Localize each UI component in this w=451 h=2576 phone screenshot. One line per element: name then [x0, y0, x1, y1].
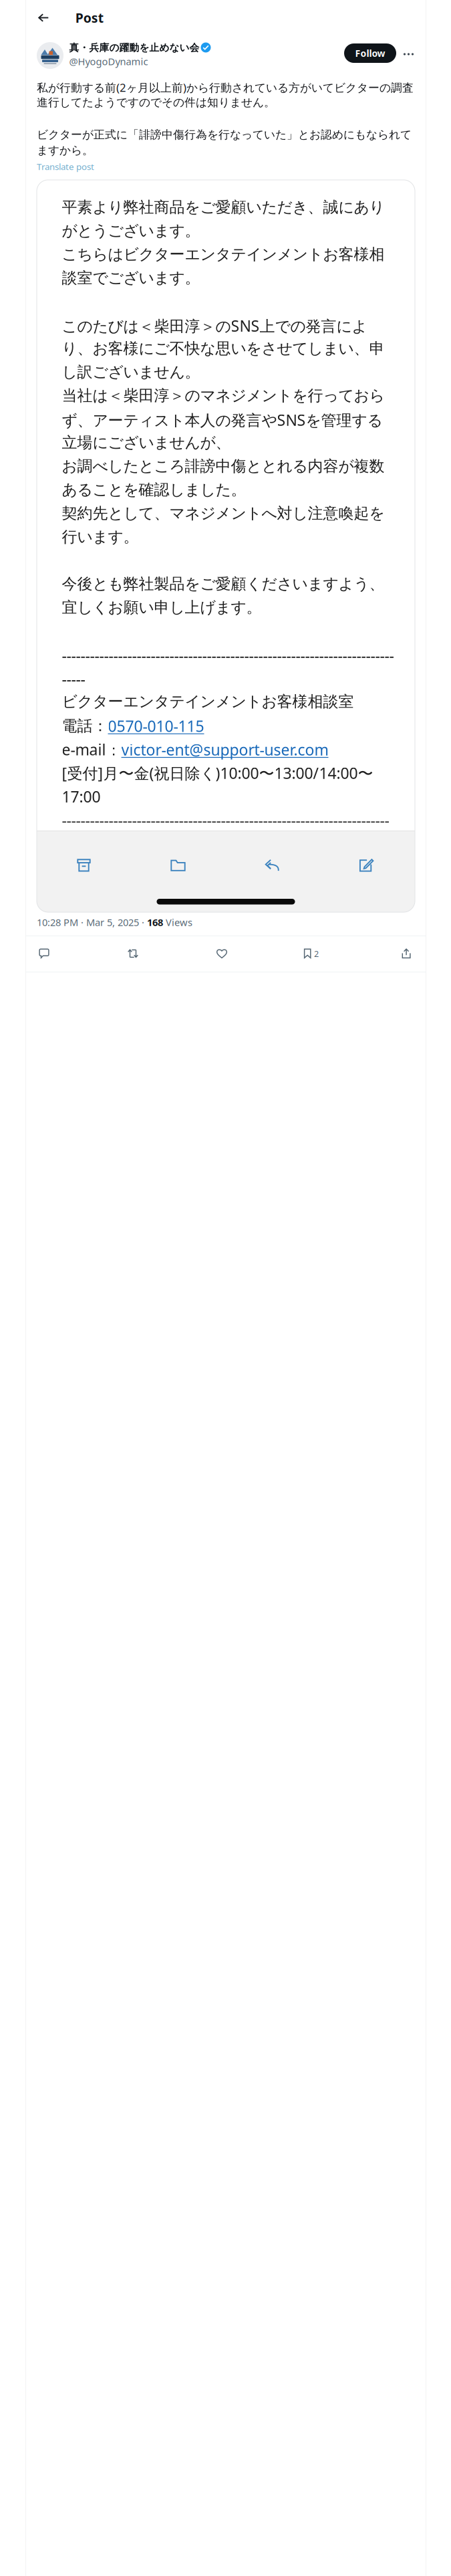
button[interactable]: Follow — [344, 43, 396, 63]
staticText: 電話： — [62, 716, 108, 736]
staticText: 0570-010-115 — [108, 715, 204, 736]
staticText: 2 — [314, 948, 319, 959]
staticText: Views — [163, 916, 192, 929]
staticText: ----------------------------------------… — [62, 645, 394, 666]
staticText: り、お客様にご不快な思いをさせてしまい、申 — [62, 339, 385, 358]
staticText: Post — [75, 9, 103, 26]
staticText: あることを確認しました。 — [62, 480, 246, 499]
staticText: 10:28 PM · Mar 5, 2025 · — [37, 916, 147, 929]
staticText: e-mail： — [62, 739, 121, 760]
staticText: 談室でございます。 — [62, 268, 200, 288]
button[interactable]: Reply — [31, 940, 57, 967]
staticText: Translate post — [37, 161, 94, 173]
staticText: victor-ent@support-user.com — [121, 739, 328, 760]
staticText: 今後とも弊社製品をご愛顧くださいますよう、 — [62, 574, 385, 594]
button[interactable]: Like — [208, 940, 235, 967]
staticText: ビクターが正式に「誹謗中傷行為を行なっていた」とお認めにもなられて — [37, 128, 412, 142]
staticText: し訳ございません。 — [62, 362, 200, 382]
staticText: 宜しくお願い申し上げます。 — [62, 598, 262, 617]
staticText: @HyogoDynamic — [69, 55, 148, 68]
button[interactable]: Back — [29, 3, 58, 33]
button[interactable]: More — [399, 44, 419, 64]
staticText: 行います。 — [62, 527, 139, 546]
button[interactable]: Translate post — [37, 161, 94, 173]
staticText: 立場にございませんが、 — [62, 433, 231, 452]
staticText: ますから。 — [37, 143, 94, 157]
button[interactable]: Share — [393, 940, 420, 967]
staticText: 真・兵庫の躍動を止めない会 — [69, 42, 200, 54]
staticText: 168 — [147, 916, 163, 929]
staticText: ----------------------------------------… — [62, 810, 389, 831]
staticText: 私が行動する前(2ヶ月以上前)から行動されている方がいてビクターの調査 — [37, 80, 414, 95]
button[interactable]: Move to folder — [131, 848, 225, 883]
staticText: がとうございます。 — [62, 221, 200, 240]
button[interactable]: Post — [70, 4, 109, 31]
staticText: 当社は＜柴田淳＞のマネジメントを行っておら — [62, 386, 385, 405]
button[interactable]: Repost — [120, 940, 146, 967]
staticText: 進行してたようですのでその件は知りません。 — [37, 95, 275, 109]
staticText: [受付]月〜金(祝日除く)10:00〜13:00/14:00〜 — [62, 763, 373, 783]
button[interactable]: Archive — [37, 848, 131, 883]
button[interactable]: Bookmark — [303, 940, 329, 967]
staticText: ず、アーティスト本人の発言やSNSを管理する — [62, 409, 383, 430]
staticText: お調べしたところ誹謗中傷ととれる内容が複数 — [62, 457, 385, 476]
staticText: 平素より弊社商品をご愛顧いただき、誠にあり — [62, 198, 385, 217]
button[interactable]: Compose — [319, 848, 414, 883]
staticText: Follow — [355, 47, 385, 60]
button[interactable]: Reply — [225, 848, 319, 883]
button[interactable]: 平素より弊社商品をご愛顧いただき、誠にあり — [37, 180, 415, 912]
staticText: 契約先として、マネジメントへ対し注意喚起を — [62, 504, 385, 523]
staticText: ビクターエンタテインメントお客様相談室 — [62, 692, 354, 711]
staticText: ----- — [62, 668, 85, 689]
button[interactable]: Profile photo — [37, 42, 63, 69]
staticText: こちらはビクターエンタテインメントお客様相 — [62, 245, 385, 264]
staticText: このたびは＜柴田淳＞のSNS上での発言によ — [62, 315, 367, 336]
staticText: 17:00 — [62, 786, 101, 807]
